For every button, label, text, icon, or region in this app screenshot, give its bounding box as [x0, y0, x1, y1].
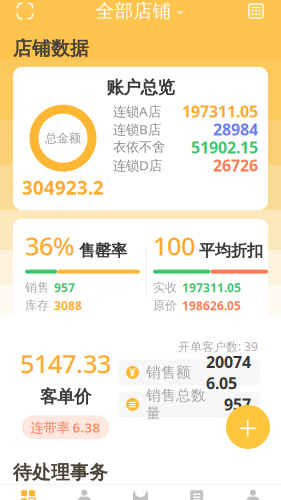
staticText: 连锁B店 — [113, 120, 161, 138]
staticText: 957 — [54, 280, 75, 295]
staticText: 店铺数据 — [13, 37, 89, 60]
button[interactable]: 日历 — [239, 0, 273, 28]
button[interactable]: 我的 — [225, 484, 281, 500]
button[interactable]: 客户 — [56, 484, 112, 500]
staticText: 51902.15 — [191, 137, 258, 158]
staticText: 全部店铺 — [95, 0, 171, 22]
staticText: 客单价 — [40, 386, 91, 407]
staticText: 28984 — [213, 119, 258, 140]
staticText: 销售总数量 — [146, 386, 206, 422]
button[interactable]: 新建 — [226, 404, 270, 450]
staticText: 198626.05 — [182, 297, 241, 313]
staticText: 3088 — [54, 297, 82, 313]
staticText: 售罄率 — [79, 241, 127, 261]
staticText: 100 — [153, 229, 195, 263]
staticText: 304923.2 — [22, 175, 104, 200]
staticText: 36% — [25, 229, 75, 263]
staticText: 5147.33 — [20, 346, 111, 380]
staticText: 原价 — [153, 298, 177, 313]
staticText: 总金额 — [45, 131, 81, 145]
staticText: + — [238, 404, 258, 450]
staticText: 待处理事务 — [13, 461, 108, 484]
button[interactable]: 单据 — [169, 484, 225, 500]
staticText: ≡ — [128, 398, 137, 410]
staticText: 平均折扣 — [199, 241, 263, 261]
staticText: 连带率 6.38 — [30, 418, 100, 436]
staticText: 26726 — [213, 155, 258, 176]
staticText: 销售 — [25, 280, 49, 295]
button[interactable]: 扫一扫 — [8, 0, 42, 28]
button[interactable]: 商品 — [112, 484, 169, 500]
staticText: ⌄ — [174, 2, 185, 17]
staticText: 200746.05 — [206, 351, 251, 394]
button[interactable]: 全部店铺 — [89, 0, 191, 26]
staticText: 实收 — [153, 280, 177, 295]
staticText: 开单客户数: 39 — [178, 338, 258, 354]
staticText: 库存 — [25, 298, 49, 313]
staticText: 连锁A店 — [113, 102, 161, 120]
staticText: 957 — [224, 394, 251, 415]
button[interactable]: 工作台 — [0, 484, 56, 500]
staticText: ¥ — [129, 365, 135, 379]
staticText: 连锁D店 — [113, 156, 162, 174]
staticText: 衣依不舍 — [113, 139, 165, 155]
staticText: 197311.05 — [182, 101, 258, 122]
staticText: 账户总览 — [106, 77, 174, 98]
staticText: 销售额 — [146, 363, 191, 381]
staticText: 197311.05 — [182, 280, 241, 295]
